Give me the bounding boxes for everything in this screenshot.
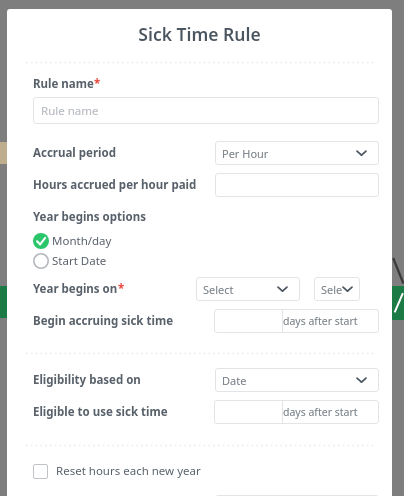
button[interactable]: Select xyxy=(196,277,300,301)
other: Open dropdown xyxy=(343,286,352,292)
staticText: Year begins options xyxy=(33,209,146,225)
staticText: Eligible to use sick time xyxy=(33,404,168,420)
button[interactable]: Date xyxy=(215,368,379,392)
staticText: Year begins on xyxy=(33,281,118,297)
button[interactable]: Per Hour xyxy=(215,141,379,165)
button[interactable] xyxy=(214,309,282,333)
button[interactable]: Sele xyxy=(314,277,360,301)
staticText: Rule name xyxy=(33,76,94,92)
button[interactable] xyxy=(214,400,282,424)
staticText: Begin accruing sick time xyxy=(33,313,173,329)
other: Open dropdown xyxy=(278,286,287,292)
staticText: * xyxy=(94,76,101,92)
staticText: days after start date xyxy=(283,314,379,328)
other: Open dropdown xyxy=(357,377,366,383)
button[interactable]: Start Date xyxy=(33,252,107,270)
staticText: * xyxy=(118,281,125,297)
staticText: Accrual period xyxy=(33,145,116,161)
other: Open dropdown xyxy=(357,150,366,156)
button[interactable]: Reset hours each new year xyxy=(33,461,201,481)
staticText: days after start date xyxy=(283,405,379,419)
staticText: Hours accrued per hour paid xyxy=(33,177,197,193)
staticText: Select xyxy=(203,282,276,297)
staticText: Start Date xyxy=(52,253,107,269)
staticText: Month/day xyxy=(52,233,112,249)
staticText: Sele xyxy=(321,282,343,297)
button[interactable] xyxy=(215,495,379,496)
staticText: Reset hours each new year xyxy=(56,463,201,479)
staticText: Rule name xyxy=(41,103,99,119)
staticText: Per Hour xyxy=(222,146,355,161)
button[interactable]: Month/day xyxy=(33,232,112,250)
button[interactable] xyxy=(215,173,379,197)
button[interactable]: Rule name xyxy=(33,97,379,124)
staticText: Date xyxy=(222,373,355,388)
staticText: Eligibility based on xyxy=(33,372,141,388)
staticText: Sick Time Rule xyxy=(138,22,261,46)
